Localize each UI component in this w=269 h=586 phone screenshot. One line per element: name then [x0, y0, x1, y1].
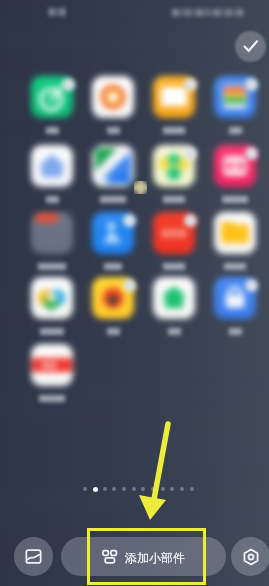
button[interactable]: App: [214, 277, 256, 333]
button[interactable]: App: [92, 145, 134, 201]
button[interactable]: App: [153, 212, 195, 268]
staticText: 添加小部件: [125, 550, 185, 565]
button[interactable]: App: [214, 212, 256, 268]
button[interactable]: App: [92, 212, 134, 268]
button[interactable]: Wallpaper: [14, 537, 53, 576]
button[interactable]: App: [31, 277, 73, 333]
button[interactable]: App: [153, 76, 195, 132]
button[interactable]: 添加小部件: [61, 537, 226, 576]
button[interactable]: App: [31, 76, 73, 132]
button[interactable]: Settings: [231, 537, 269, 576]
button[interactable]: App: [153, 145, 195, 201]
button[interactable]: App: [214, 76, 256, 132]
button[interactable]: App: [214, 145, 256, 201]
button[interactable]: App: [31, 344, 73, 400]
button[interactable]: App: [92, 277, 134, 333]
button[interactable]: Done: [231, 27, 269, 66]
button[interactable]: App: [153, 277, 195, 333]
button[interactable]: App: [31, 212, 73, 268]
button[interactable]: App: [31, 145, 73, 201]
button[interactable]: App: [92, 76, 134, 132]
